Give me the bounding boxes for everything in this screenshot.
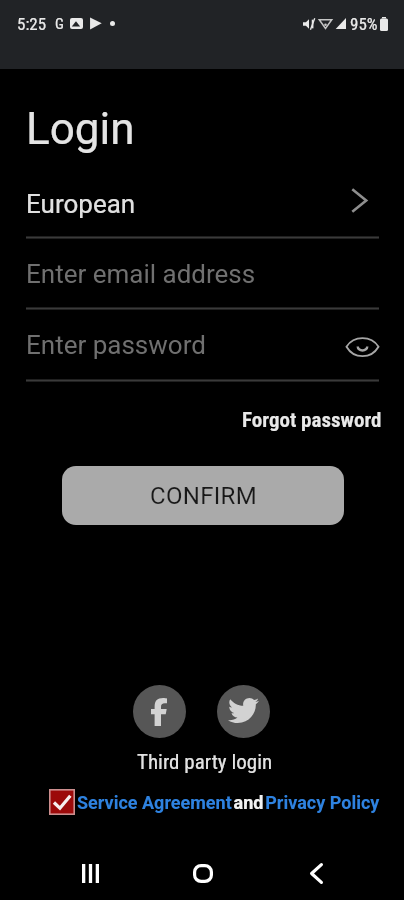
button[interactable]: Home: [158, 846, 247, 900]
staticText: Enter email address: [26, 259, 256, 289]
staticText: 5:25: [17, 14, 47, 34]
staticText: Service Agreement and Privacy Policy: [77, 792, 380, 813]
button[interactable]: Recent apps: [46, 846, 134, 900]
button[interactable]: Enter email address: [0, 245, 404, 307]
button[interactable]: CONFIRM: [62, 466, 344, 525]
button[interactable]: Enter password: [0, 316, 404, 379]
staticText: 95%: [350, 14, 378, 34]
staticText: Login: [26, 103, 135, 155]
button[interactable]: Back: [272, 846, 360, 900]
staticText: Third party login: [137, 750, 273, 775]
button[interactable]: Show password: [340, 325, 384, 369]
staticText: CONFIRM: [150, 482, 257, 510]
button[interactable]: European: [0, 177, 404, 237]
button[interactable]: Facebook login: [133, 685, 186, 738]
staticText: Enter password: [26, 330, 206, 360]
staticText: G: [55, 15, 64, 33]
staticText: European: [26, 189, 136, 219]
button[interactable]: Service Agreement and Privacy Policy: [49, 786, 380, 818]
button[interactable]: Forgot password: [232, 400, 372, 438]
button[interactable]: Twitter login: [217, 685, 270, 738]
staticText: Forgot password: [242, 408, 382, 433]
